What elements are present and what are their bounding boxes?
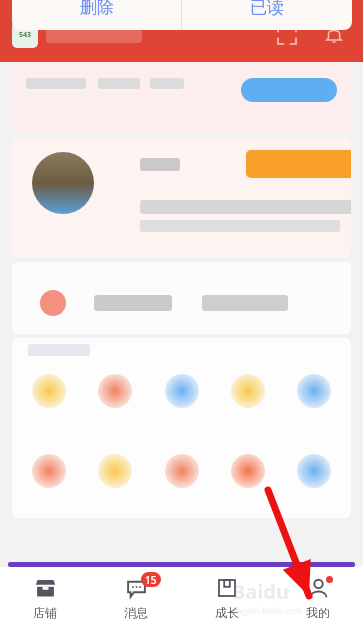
button[interactable] — [26, 448, 72, 494]
staticText: 我的 — [306, 605, 330, 620]
staticText: 消息 — [124, 605, 148, 620]
button[interactable] — [291, 448, 337, 494]
staticText: 店铺 — [33, 605, 57, 620]
button[interactable]: 删除 — [12, 0, 181, 30]
button[interactable] — [159, 448, 205, 494]
button[interactable] — [92, 368, 138, 414]
button[interactable]: Notifications — [318, 20, 350, 52]
button[interactable] — [225, 448, 271, 494]
button[interactable]: 已读 — [182, 0, 352, 30]
button[interactable] — [225, 368, 271, 414]
staticText: 543 — [19, 30, 32, 40]
button[interactable]: 我的 — [272, 567, 363, 628]
staticText: jingyan.baidu.com — [232, 605, 302, 616]
button[interactable] — [26, 368, 72, 414]
staticText: 已读 — [250, 0, 284, 18]
staticText: 15 — [145, 573, 157, 587]
button[interactable]: Scan — [272, 20, 302, 50]
staticText: Baidu — [232, 578, 289, 605]
button[interactable]: 15 — [90, 567, 181, 628]
button[interactable]: 成长 — [181, 567, 272, 628]
button[interactable] — [159, 368, 205, 414]
button[interactable] — [291, 368, 337, 414]
staticText: 删除 — [80, 0, 114, 18]
button[interactable] — [241, 78, 337, 102]
button[interactable] — [246, 150, 351, 178]
staticText: 成长 — [215, 605, 239, 620]
button[interactable]: 店铺 — [0, 567, 90, 628]
button[interactable] — [92, 448, 138, 494]
